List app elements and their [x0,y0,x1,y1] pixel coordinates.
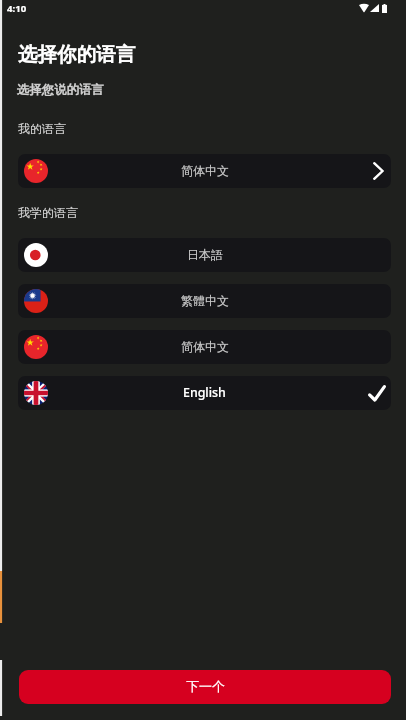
other: Mobile signal [370,4,379,12]
button[interactable]: 繁體中文 [18,284,391,318]
other: Change language [373,162,385,180]
staticText: 下一个 [186,678,225,694]
staticText: 繁體中文 [181,293,229,308]
staticText: 选择您说的语言 [17,82,104,98]
staticText: 我的语言 [18,121,66,136]
other: Battery [382,4,387,13]
button[interactable]: 简体中文 [18,154,391,188]
staticText: 我学的语言 [18,205,78,220]
button[interactable]: 简体中文 [18,330,391,364]
button[interactable]: 下一个 [19,670,391,704]
staticText: 选择你的语言 [18,42,135,67]
other: Wi-Fi [359,4,369,12]
button[interactable]: English [18,376,391,410]
button[interactable]: 日本語 [18,238,391,272]
staticText: English [183,384,226,401]
staticText: 简体中文 [181,163,229,178]
staticText: 日本語 [187,247,223,262]
other: Selected [368,385,386,402]
staticText: 4:10 [7,2,27,15]
staticText: 简体中文 [181,339,229,354]
